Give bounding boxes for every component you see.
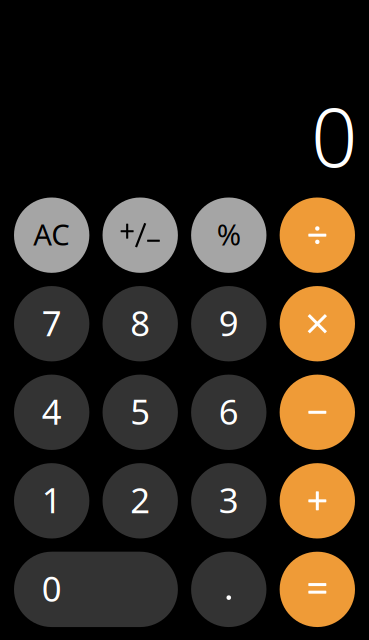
button[interactable]: Decimal point — [191, 552, 266, 627]
button[interactable]: 9 — [191, 286, 266, 361]
staticText: AC — [33, 215, 70, 254]
staticText: 0 — [42, 565, 62, 611]
button[interactable]: Plus — [280, 463, 355, 538]
staticText: 0 — [311, 81, 357, 189]
button[interactable]: 7 — [14, 286, 89, 361]
staticText: 7 — [42, 300, 62, 346]
staticText: 1 — [42, 477, 62, 523]
button[interactable]: Equals — [280, 552, 355, 627]
staticText: 9 — [219, 300, 239, 346]
button[interactable]: 5 — [102, 375, 178, 450]
staticText: 5 — [130, 388, 150, 434]
button[interactable]: % — [191, 197, 266, 273]
button[interactable]: 3 — [191, 463, 266, 538]
staticText: 8 — [130, 300, 150, 346]
button[interactable]: 1 — [14, 463, 89, 538]
button[interactable]: AC — [14, 197, 89, 273]
button[interactable]: Divide — [280, 197, 355, 273]
staticText: 2 — [130, 477, 150, 523]
staticText: 3 — [219, 477, 239, 523]
button[interactable]: Minus — [280, 375, 355, 450]
staticText: 4 — [42, 388, 62, 434]
button[interactable]: 2 — [102, 463, 178, 538]
staticText: 6 — [219, 388, 239, 434]
button[interactable]: 4 — [14, 375, 89, 450]
button[interactable]: 8 — [102, 286, 178, 361]
button[interactable]: 0 — [14, 552, 178, 627]
staticText: % — [217, 215, 241, 254]
button[interactable]: Plus Minus — [102, 197, 178, 273]
button[interactable]: Multiply — [280, 286, 355, 361]
button[interactable]: 6 — [191, 375, 266, 450]
